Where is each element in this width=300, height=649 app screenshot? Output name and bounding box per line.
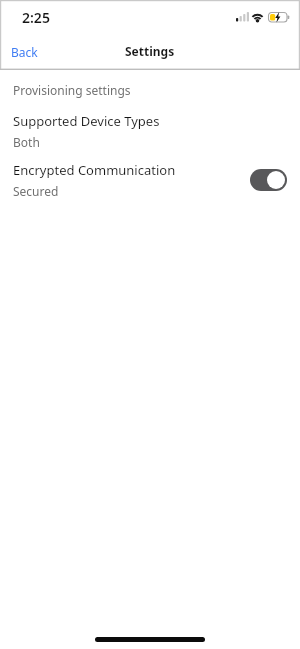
button[interactable] xyxy=(250,169,287,191)
staticText: Both xyxy=(13,134,40,150)
button[interactable]: Back xyxy=(4,38,45,66)
staticText: Encrypted Communication xyxy=(13,161,176,179)
staticText: Settings xyxy=(125,43,175,59)
staticText: Back xyxy=(11,44,38,60)
staticText: Secured xyxy=(13,183,59,199)
button[interactable]: Supported Device Types xyxy=(0,106,300,152)
staticText: Supported Device Types xyxy=(13,112,160,130)
staticText: Provisioning settings xyxy=(13,82,131,98)
staticText: 2:25 xyxy=(22,8,50,27)
button[interactable]: Encrypted Communication xyxy=(0,152,300,202)
